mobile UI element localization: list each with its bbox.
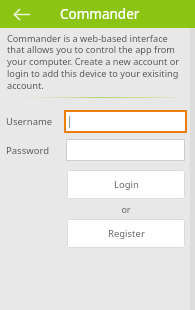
staticText: Password [6,144,66,157]
button[interactable]: Register [67,219,185,248]
button[interactable]: Login [67,170,185,199]
button[interactable]: Username field [64,110,187,133]
staticText: Commander [60,5,140,23]
staticText: Register [108,227,145,240]
button[interactable]: Back [7,0,35,28]
staticText: Commander is a web-based interface that … [7,32,185,92]
staticText: or [121,203,131,215]
staticText: Login [114,178,139,191]
button[interactable]: Password field [66,139,185,161]
staticText: Username [6,115,64,128]
